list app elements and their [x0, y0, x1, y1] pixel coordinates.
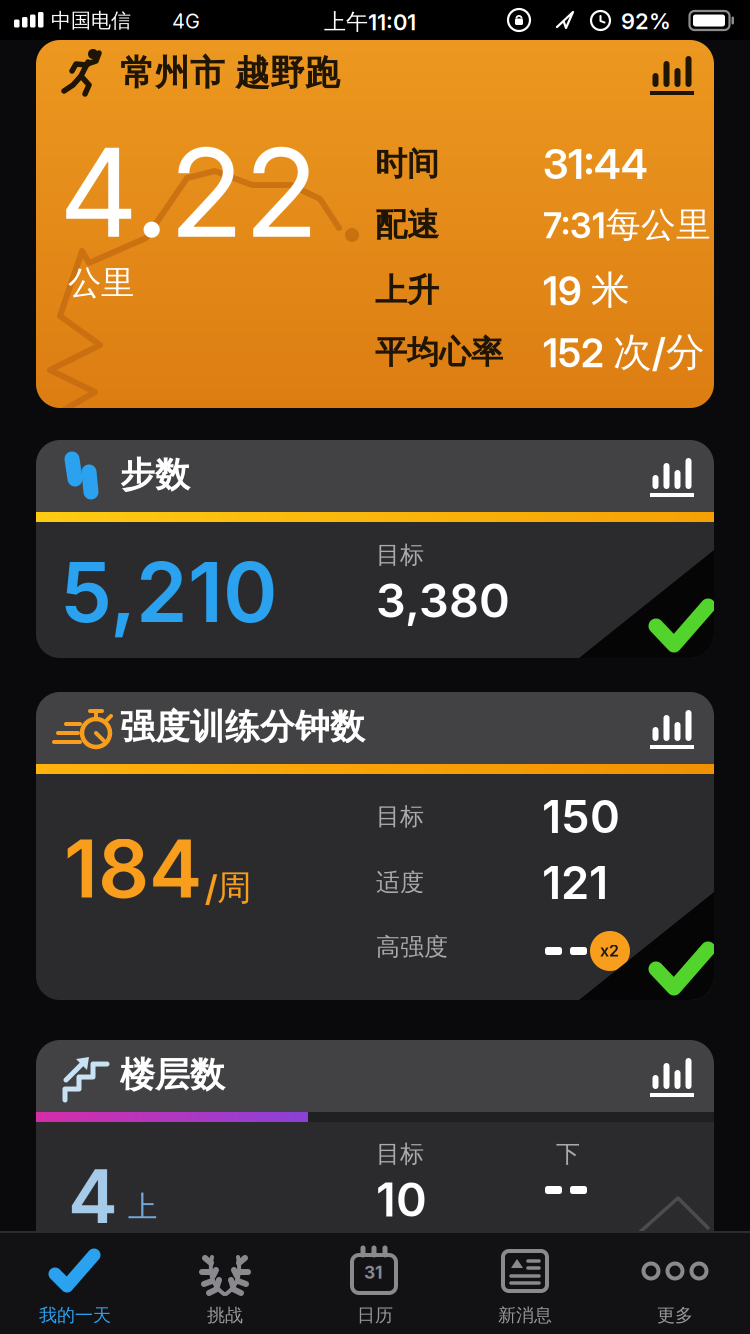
staticText: 强度训练分钟数	[120, 705, 365, 749]
staticText: 184	[64, 820, 202, 917]
staticText: 适度	[376, 867, 424, 897]
staticText: 日历	[357, 1304, 393, 1327]
button[interactable]: 查看图表	[650, 1058, 694, 1097]
staticText: 31:44	[543, 139, 648, 189]
staticText: 5,210	[60, 542, 278, 642]
staticText: 4.22	[59, 118, 319, 266]
staticText: 31	[364, 1262, 382, 1283]
button[interactable]: 挑战	[150, 1248, 300, 1327]
staticText: 19 米	[543, 266, 630, 315]
button[interactable]: 楼层数	[36, 1040, 714, 1334]
staticText: 新消息	[498, 1304, 552, 1327]
staticText: 中国电信	[51, 8, 131, 33]
staticText: 楼层数	[120, 1053, 225, 1097]
staticText: 4G	[172, 9, 200, 33]
button[interactable]: 查看图表	[650, 710, 694, 749]
staticText: 高强度	[376, 932, 448, 962]
staticText: 时间	[375, 144, 439, 184]
button[interactable]: 31	[300, 1248, 450, 1327]
button[interactable]: 强度训练分钟数	[36, 692, 714, 1000]
staticText: /周	[205, 866, 252, 910]
staticText: x2	[600, 941, 619, 960]
staticText: 10	[376, 1171, 427, 1228]
staticText: 挑战	[207, 1304, 243, 1327]
staticText: 步数	[120, 453, 190, 497]
staticText: 平均心率	[375, 332, 503, 372]
staticText: 121	[542, 855, 608, 910]
staticText: 152 次/分	[543, 328, 705, 377]
button[interactable]: 常州市 越野跑	[36, 40, 714, 408]
staticText: 目标	[376, 1139, 424, 1169]
staticText: 下	[556, 1139, 580, 1169]
staticText: 目标	[376, 540, 424, 570]
staticText: 上升	[375, 270, 439, 310]
staticText: 上	[128, 1188, 157, 1225]
staticText: 3,380	[376, 572, 510, 629]
button[interactable]: 新消息	[450, 1248, 600, 1327]
staticText: 4	[68, 1151, 118, 1241]
staticText: 我的一天	[39, 1304, 111, 1327]
staticText: 92%	[621, 8, 671, 35]
button[interactable]: 我的一天	[0, 1248, 150, 1327]
button[interactable]: 更多	[600, 1248, 750, 1327]
staticText: 7:31每公里	[543, 203, 711, 247]
staticText: 150	[542, 789, 620, 844]
staticText: 公里	[68, 262, 134, 304]
staticText: 上午11:01	[324, 8, 416, 36]
staticText: 目标	[376, 801, 424, 831]
staticText: 更多	[657, 1304, 693, 1327]
staticText: 配速	[375, 205, 439, 245]
button[interactable]: 查看图表	[650, 56, 694, 95]
button[interactable]: 步数	[36, 440, 714, 658]
button[interactable]: 查看图表	[650, 458, 694, 497]
staticText: 常州市 越野跑	[120, 51, 340, 95]
